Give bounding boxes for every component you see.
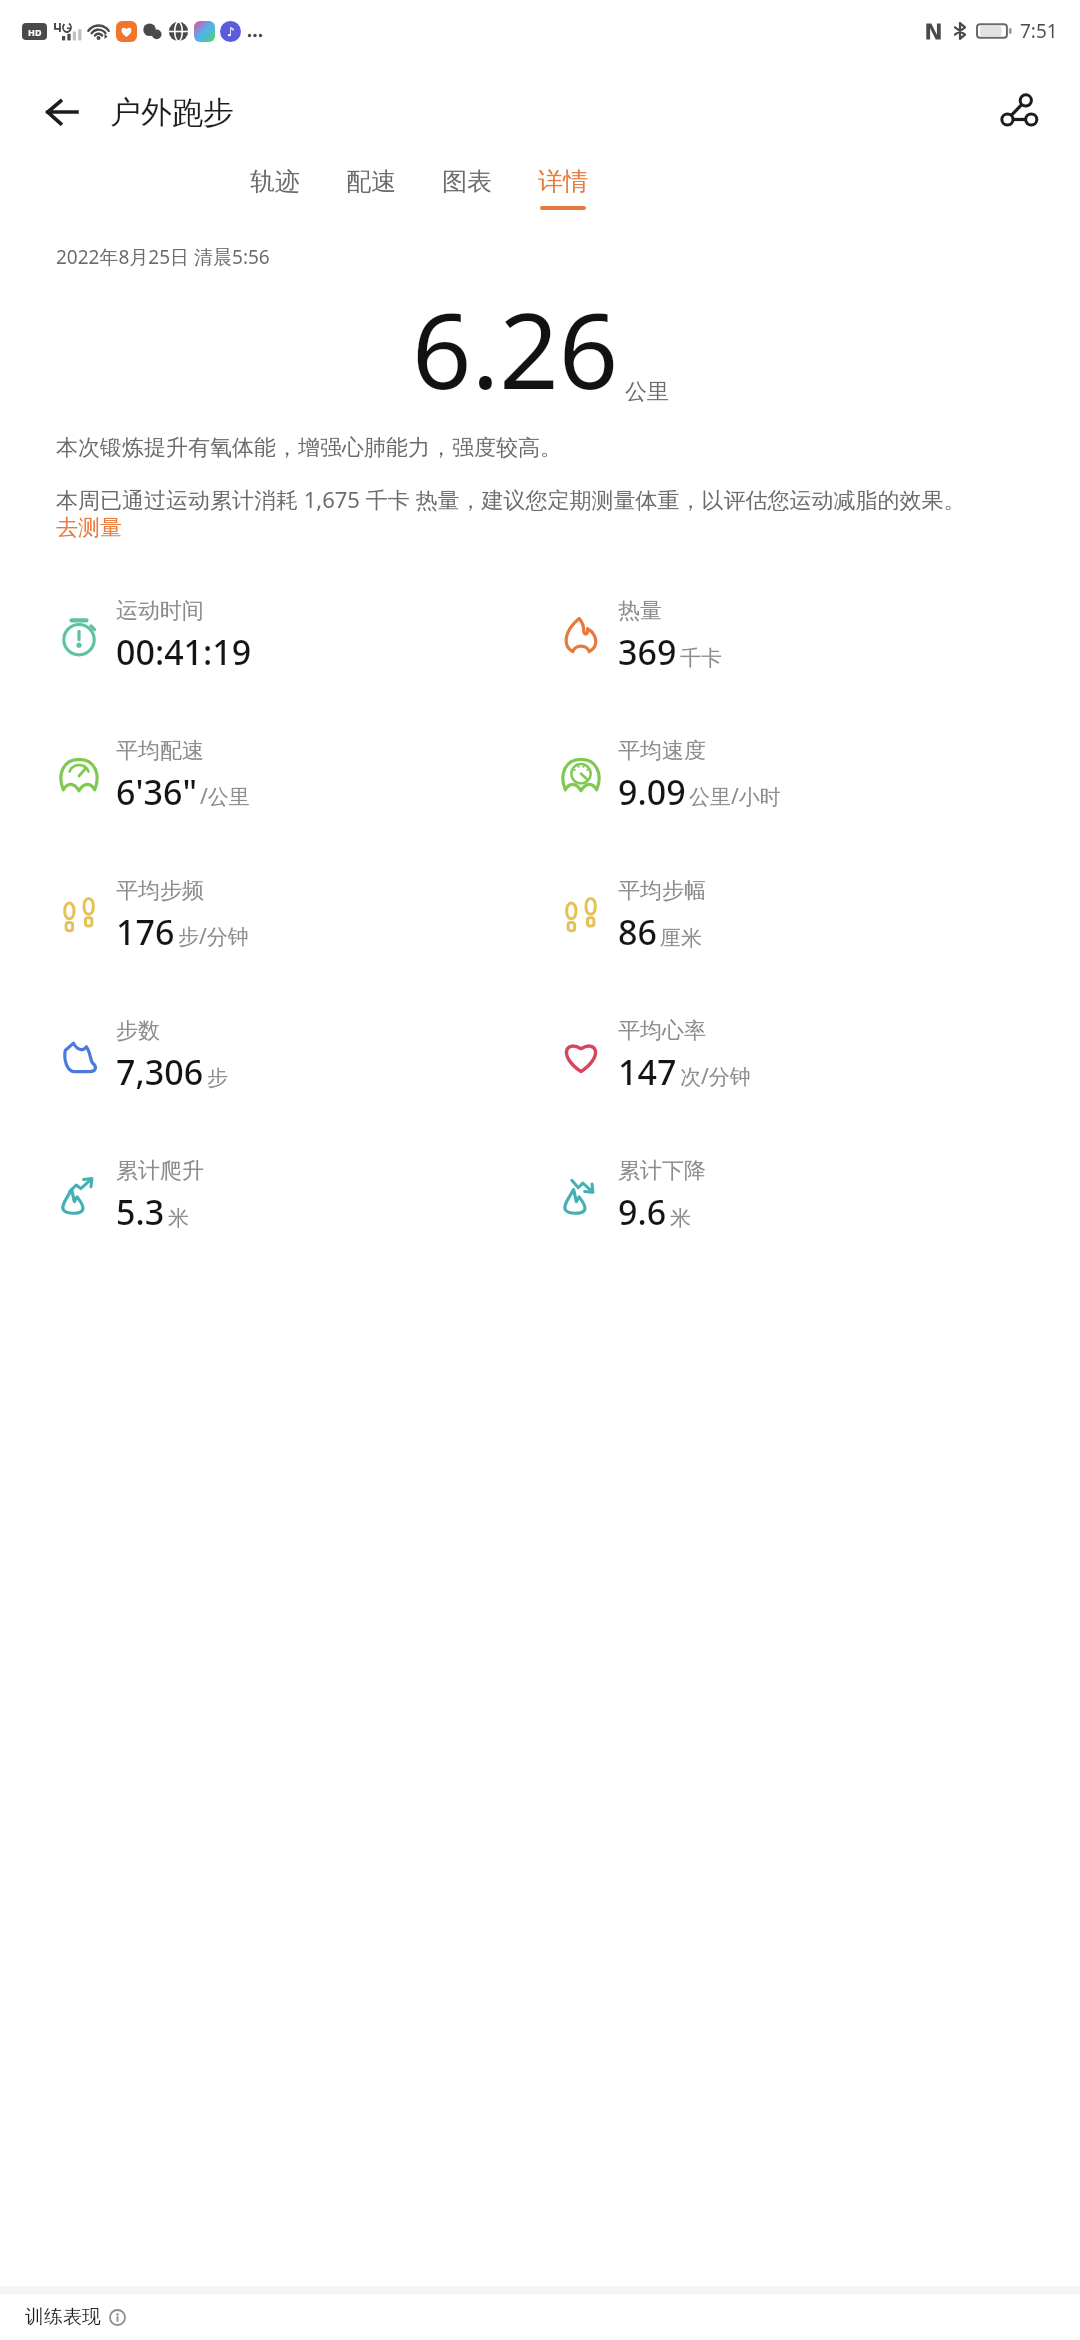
button[interactable]: 累计爬升 [56,1126,540,1266]
button[interactable]: 平均步幅 [558,846,1080,986]
button[interactable]: 运动时间 [56,566,540,706]
staticText: 5.3 [116,1189,165,1235]
staticText: 平均步幅 [618,877,706,905]
staticText: 热量 [618,597,662,625]
staticText: 公里/小时 [689,782,781,811]
staticText: 次/分钟 [680,1062,751,1091]
staticText: 详情 [538,166,588,197]
staticText: 9.09 [618,769,686,815]
button[interactable]: 去测量 [56,514,122,542]
button[interactable]: 轨迹 [250,162,300,214]
staticText: 平均心率 [618,1017,706,1045]
staticText: 6'36" [116,769,197,815]
staticText: 米 [168,1205,189,1231]
staticText: 369 [618,629,677,675]
staticText: 训练表现 [25,2305,101,2329]
staticText: 累计爬升 [116,1157,204,1185]
button[interactable]: 步数 [56,986,540,1126]
staticText: 00:41:19 [116,629,252,675]
staticText: 公里 [625,378,669,406]
button[interactable]: 平均配速 [56,706,540,846]
button[interactable]: 热量 [558,566,1080,706]
staticText: 7,306 [116,1049,204,1095]
button[interactable]: 详情 [538,162,588,214]
staticText: 配速 [346,166,396,197]
staticText: 步数 [116,1017,160,1045]
staticText: 图表 [442,166,492,197]
staticText: 步/分钟 [178,922,249,951]
staticText: 厘米 [660,925,702,951]
staticText: 运动时间 [116,597,204,625]
staticText: 平均速度 [618,737,706,765]
button[interactable]: 平均步频 [56,846,540,986]
button[interactable]: 平均速度 [558,706,1080,846]
button[interactable]: 图表 [442,162,492,214]
staticText: 千卡 [680,645,722,671]
button[interactable]: 平均心率 [558,986,1080,1126]
staticText: ♪ [227,25,235,39]
staticText: 平均步频 [116,877,204,905]
staticText: HD [28,26,42,38]
staticText: 6.26 [412,278,619,420]
other: Info [109,2309,126,2326]
staticText: 7:51 [1020,18,1058,44]
staticText: 本次锻炼提升有氧体能，增强心肺能力，强度较高。 [56,434,562,462]
staticText: 平均配速 [116,737,204,765]
staticText: 176 [116,909,175,955]
button[interactable]: Back [36,86,88,138]
staticText: /公里 [200,782,250,811]
button[interactable]: 配速 [346,162,396,214]
staticText: 步 [207,1065,228,1091]
staticText: 累计下降 [618,1157,706,1185]
staticText: 户外跑步 [110,93,234,132]
staticText: 2022年8月25日 清晨5:56 [56,244,1080,270]
staticText: 86 [618,909,657,955]
button[interactable]: 累计下降 [558,1126,1080,1266]
staticText: 本周已通过运动累计消耗 1,675 千卡 热量，建议您定期测量体重，以评估您运动… [56,484,966,514]
staticText: 147 [618,1049,677,1095]
button[interactable]: Share [992,85,1046,139]
staticText: 9.6 [618,1189,667,1235]
staticText: 轨迹 [250,166,300,197]
staticText: 米 [670,1205,691,1231]
button[interactable]: 训练表现 [0,2294,1080,2340]
staticText: 去测量 [56,514,122,542]
